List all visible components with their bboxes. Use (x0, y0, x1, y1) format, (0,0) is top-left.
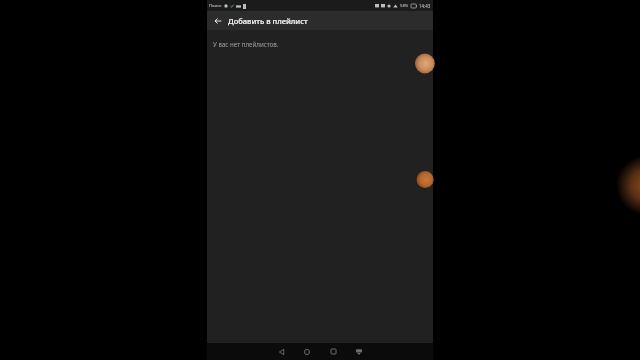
staticText: Поиск (209, 3, 222, 9)
button[interactable]: Назад (268, 343, 294, 360)
staticText: 14:43 (419, 3, 431, 9)
staticText: Добавить в плейлист (228, 16, 308, 26)
button[interactable]: Недавние (320, 343, 346, 360)
staticText: У вас нет плейлистов. (213, 40, 279, 48)
button[interactable]: Домой (294, 343, 320, 360)
button[interactable]: Скрыть клавиатуру (346, 343, 372, 360)
staticText: 58% (400, 3, 409, 9)
button[interactable]: Назад (211, 14, 225, 28)
